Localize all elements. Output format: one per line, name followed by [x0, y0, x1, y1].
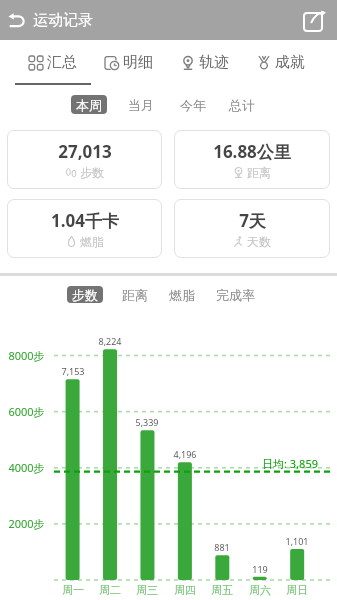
staticText: 8,224	[98, 335, 122, 347]
button[interactable]: 距离	[122, 287, 148, 303]
staticText: 6000步	[8, 404, 45, 419]
staticText: 步数	[72, 287, 98, 303]
staticText: 周三	[136, 583, 158, 597]
button[interactable]: 今年	[180, 97, 206, 113]
staticText: 周日	[286, 583, 308, 597]
staticText: 步数	[80, 165, 104, 180]
staticText: 7天	[239, 209, 266, 232]
button[interactable]: 当月	[128, 97, 154, 113]
staticText: 轨迹	[199, 53, 229, 72]
staticText: 燃脂	[80, 234, 104, 249]
button[interactable]: 本周	[71, 95, 107, 114]
staticText: 4,196	[173, 448, 197, 460]
staticText: 距离	[247, 165, 271, 180]
button[interactable]	[293, 0, 337, 40]
staticText: 运动记录	[33, 11, 93, 30]
button[interactable]: 27,013	[7, 130, 162, 189]
button[interactable]: 1.04千卡	[7, 199, 162, 258]
staticText: 周二	[99, 583, 121, 597]
staticText: 明细	[123, 53, 153, 72]
button[interactable]: 步数	[67, 286, 103, 303]
staticText: 成就	[275, 53, 305, 72]
staticText: 881	[214, 541, 230, 553]
staticText: 27,013	[58, 140, 112, 163]
staticText: 119	[252, 563, 268, 575]
staticText: 1,101	[285, 535, 309, 547]
staticText: 天数	[247, 234, 271, 249]
staticText: 8000步	[8, 348, 45, 363]
button[interactable]: 汇总	[15, 40, 91, 85]
button[interactable]: 燃脂	[169, 287, 195, 303]
staticText: 汇总	[47, 53, 77, 72]
button[interactable]: 明细	[91, 40, 167, 85]
staticText: 1.04千卡	[51, 209, 119, 232]
staticText: 周五	[211, 583, 233, 597]
staticText: 16.88公里	[213, 140, 291, 163]
staticText: 本周	[76, 97, 102, 113]
staticText: 7,153	[61, 365, 85, 377]
staticText: 4000步	[8, 460, 45, 475]
staticText: 2000步	[8, 516, 45, 531]
button[interactable]: 16.88公里	[174, 130, 330, 189]
staticText: 日均: 3,859	[262, 456, 318, 471]
staticText: 周四	[174, 583, 196, 597]
staticText: 5,339	[135, 416, 159, 428]
staticText: 周六	[249, 583, 271, 597]
button[interactable]: 轨迹	[167, 40, 243, 85]
button[interactable]: 成就	[243, 40, 319, 85]
button[interactable]	[0, 0, 33, 40]
button[interactable]: 总计	[229, 97, 255, 113]
staticText: 周一	[62, 583, 84, 597]
button[interactable]: 7天	[174, 199, 330, 258]
button[interactable]: 完成率	[216, 287, 255, 303]
